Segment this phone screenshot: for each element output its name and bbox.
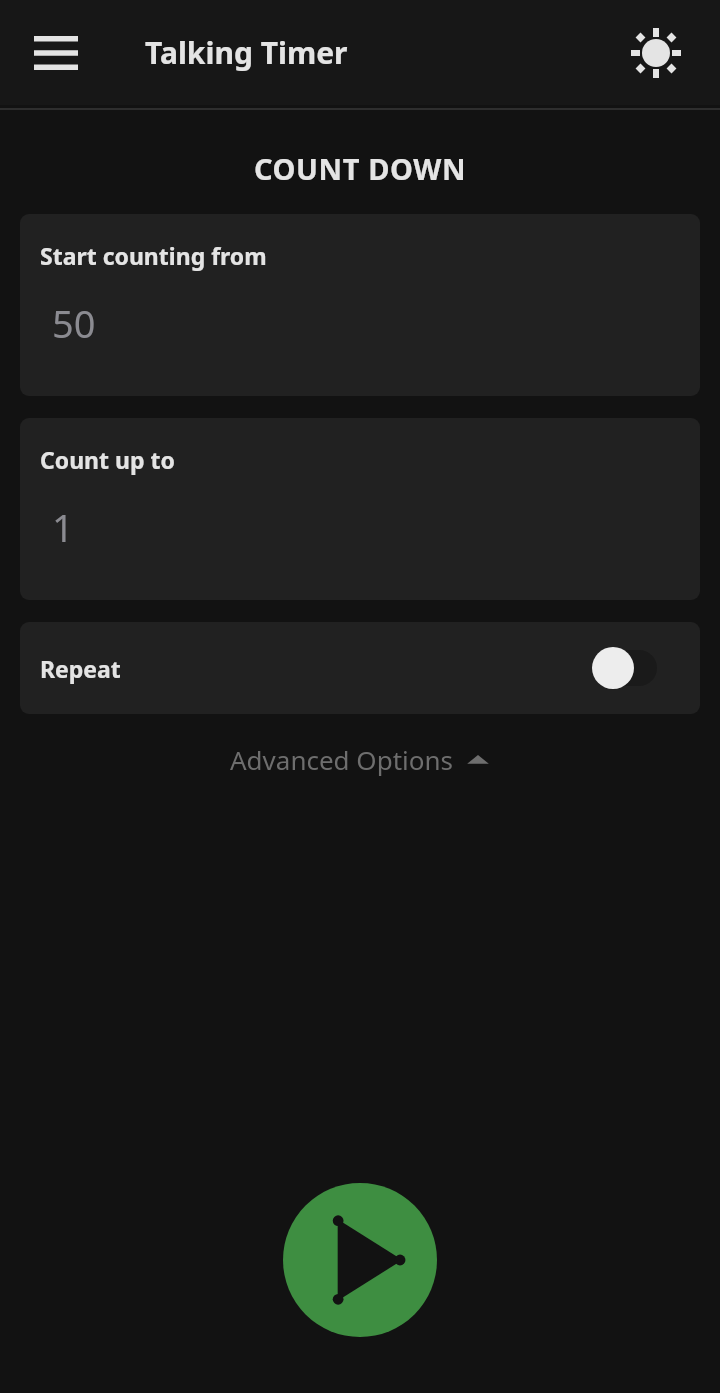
button[interactable]: Start timer: [283, 1183, 437, 1337]
staticText: 50: [52, 297, 96, 349]
staticText: Talking Timer: [145, 32, 348, 73]
button[interactable]: Count up to: [20, 418, 700, 600]
button[interactable]: Repeat: [20, 622, 700, 714]
staticText: 1: [52, 501, 74, 553]
button[interactable]: Advanced Options: [220, 736, 500, 783]
button[interactable]: Brightness: [620, 17, 692, 89]
button[interactable]: Start counting from: [20, 214, 700, 396]
staticText: Repeat: [40, 653, 121, 684]
staticText: Count up to: [40, 444, 175, 475]
staticText: Advanced Options: [230, 742, 454, 777]
button[interactable]: Open navigation menu: [24, 21, 88, 85]
staticText: Start counting from: [40, 240, 267, 271]
staticText: COUNT DOWN: [0, 149, 720, 188]
